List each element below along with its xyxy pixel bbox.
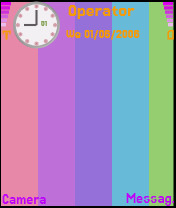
other: Signal strength [0, 0, 13, 40]
staticText: Camera [2, 192, 47, 208]
staticText: Operator [68, 0, 135, 20]
staticText: Messag. [126, 191, 175, 207]
button[interactable]: Camera [0, 192, 60, 208]
staticText: We 01/06/2006 [66, 27, 140, 41]
button[interactable]: Messag. [116, 191, 176, 207]
staticText: 01 [41, 19, 47, 28]
other: Battery level [163, 0, 176, 40]
